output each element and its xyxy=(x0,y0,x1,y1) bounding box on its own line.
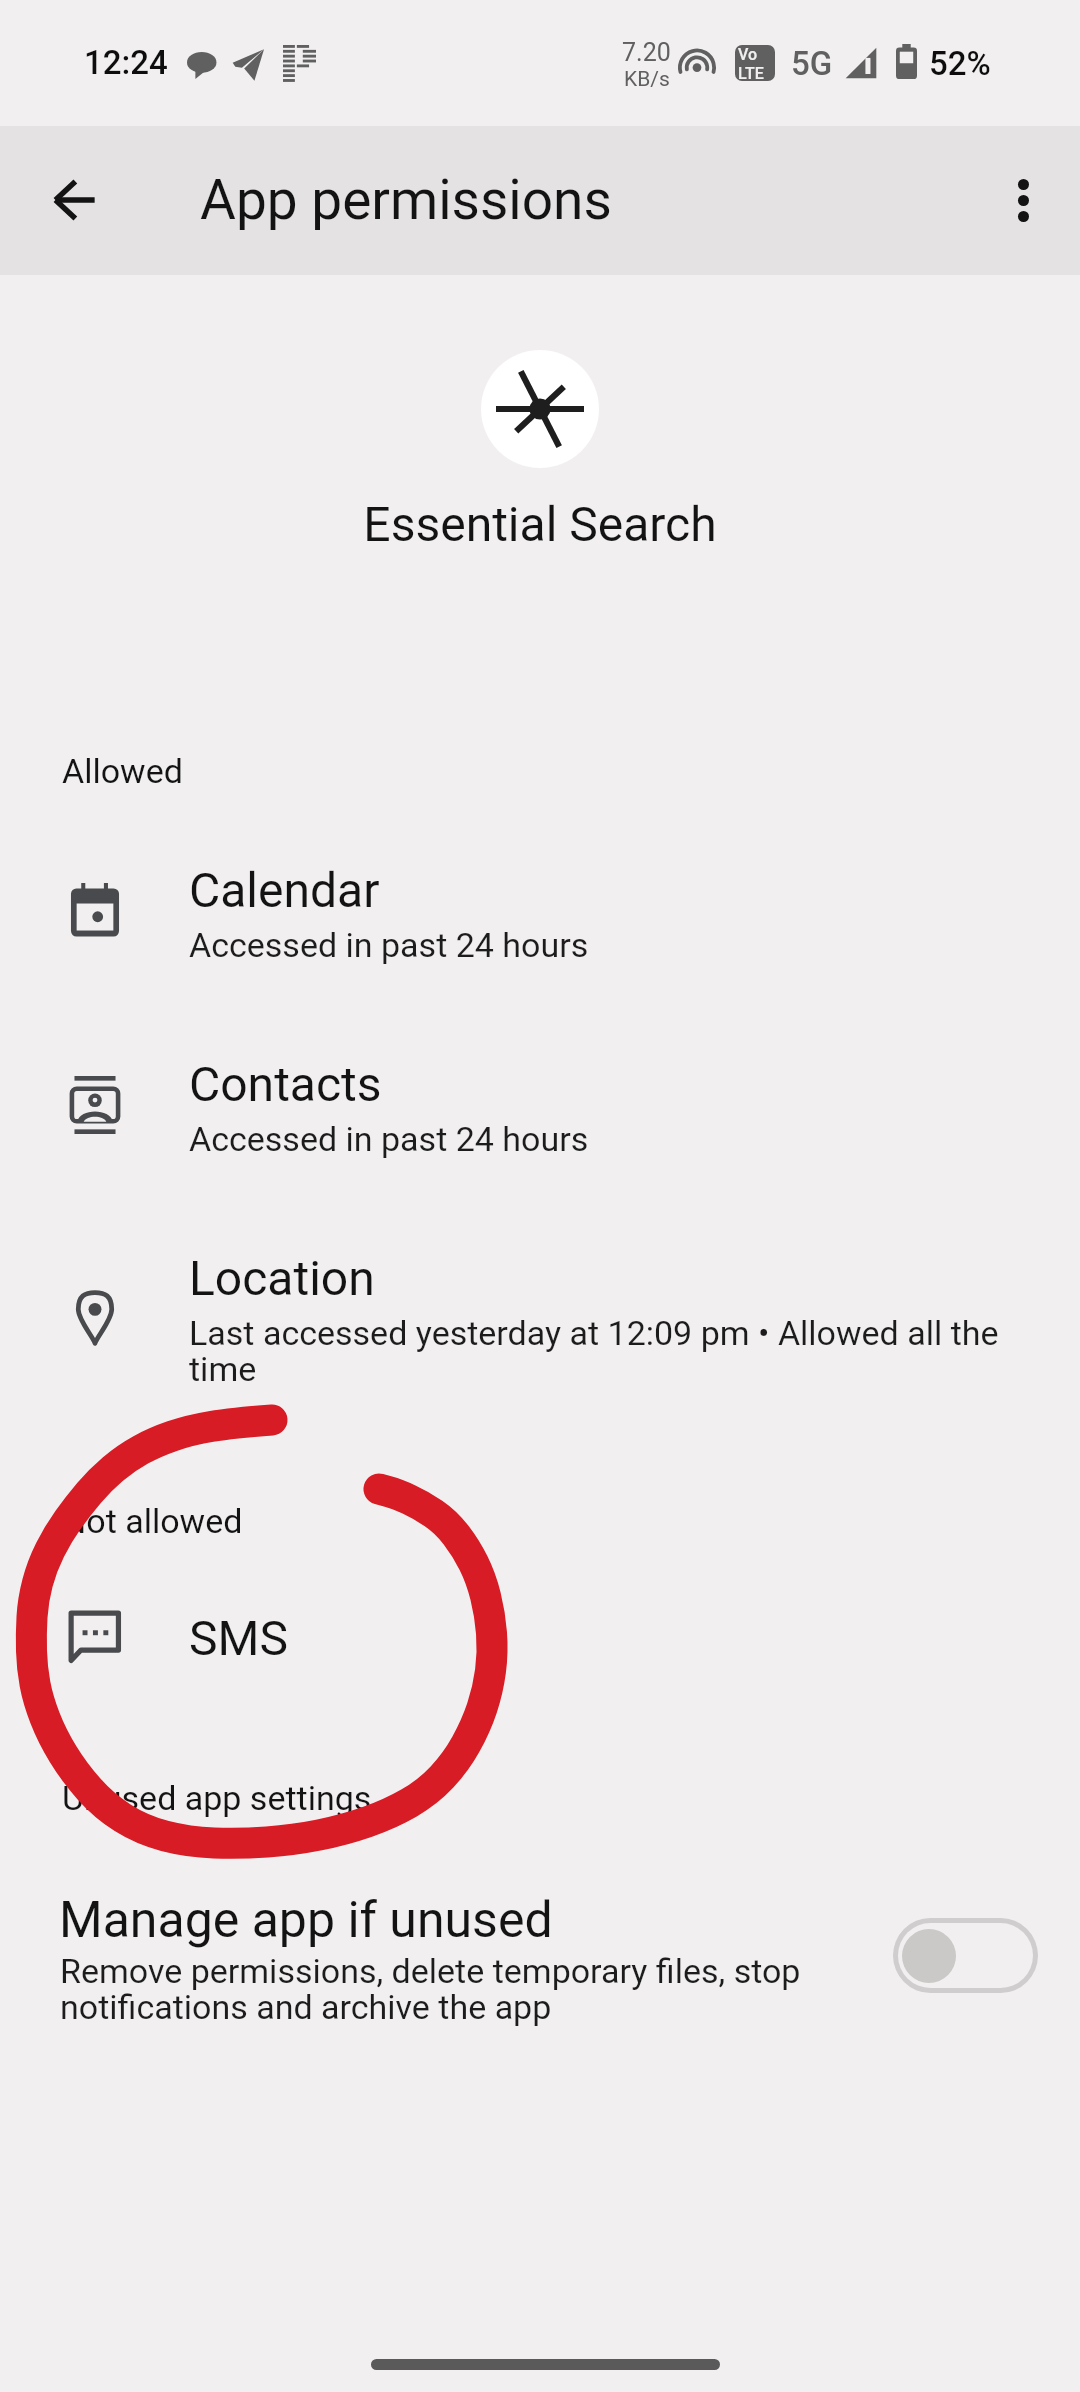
staticText: 52% xyxy=(929,44,991,83)
staticText: Allowed xyxy=(62,751,183,791)
staticText: KB/s xyxy=(624,67,670,92)
staticText: SMS xyxy=(189,1610,288,1666)
staticText: Manage app if unused xyxy=(59,1891,553,1950)
staticText: Accessed in past 24 hours xyxy=(189,925,589,965)
staticText: Last accessed yesterday at 12:09 pm • Al… xyxy=(189,1313,1009,1389)
staticText: 5G xyxy=(791,44,833,83)
button[interactable]: Back xyxy=(29,155,119,245)
button[interactable]: SMS xyxy=(0,1576,1080,1686)
staticText: Calendar xyxy=(189,862,380,918)
staticText: Vo xyxy=(738,45,758,64)
staticText: Unused app settings xyxy=(62,1778,372,1818)
staticText: 12:24 xyxy=(84,43,168,82)
staticText: Contacts xyxy=(189,1056,382,1112)
staticText: Accessed in past 24 hours xyxy=(189,1119,589,1159)
staticText: LTE xyxy=(738,64,764,81)
button[interactable]: Location xyxy=(0,1216,1080,1405)
button[interactable]: Manage app if unused xyxy=(893,1918,1038,1993)
staticText: Remove permissions, delete temporary fil… xyxy=(60,1951,850,2027)
button[interactable]: More options xyxy=(978,155,1068,245)
button[interactable]: Calendar xyxy=(0,828,1080,1017)
staticText: App permissions xyxy=(200,168,612,232)
staticText: 7.20 xyxy=(622,38,671,67)
staticText: Location xyxy=(189,1250,375,1306)
button[interactable]: Contacts xyxy=(0,1022,1080,1211)
staticText: Not allowed xyxy=(62,1501,243,1541)
staticText: Essential Search xyxy=(0,496,1080,552)
button[interactable]: Manage app if unused xyxy=(0,1875,1080,2040)
